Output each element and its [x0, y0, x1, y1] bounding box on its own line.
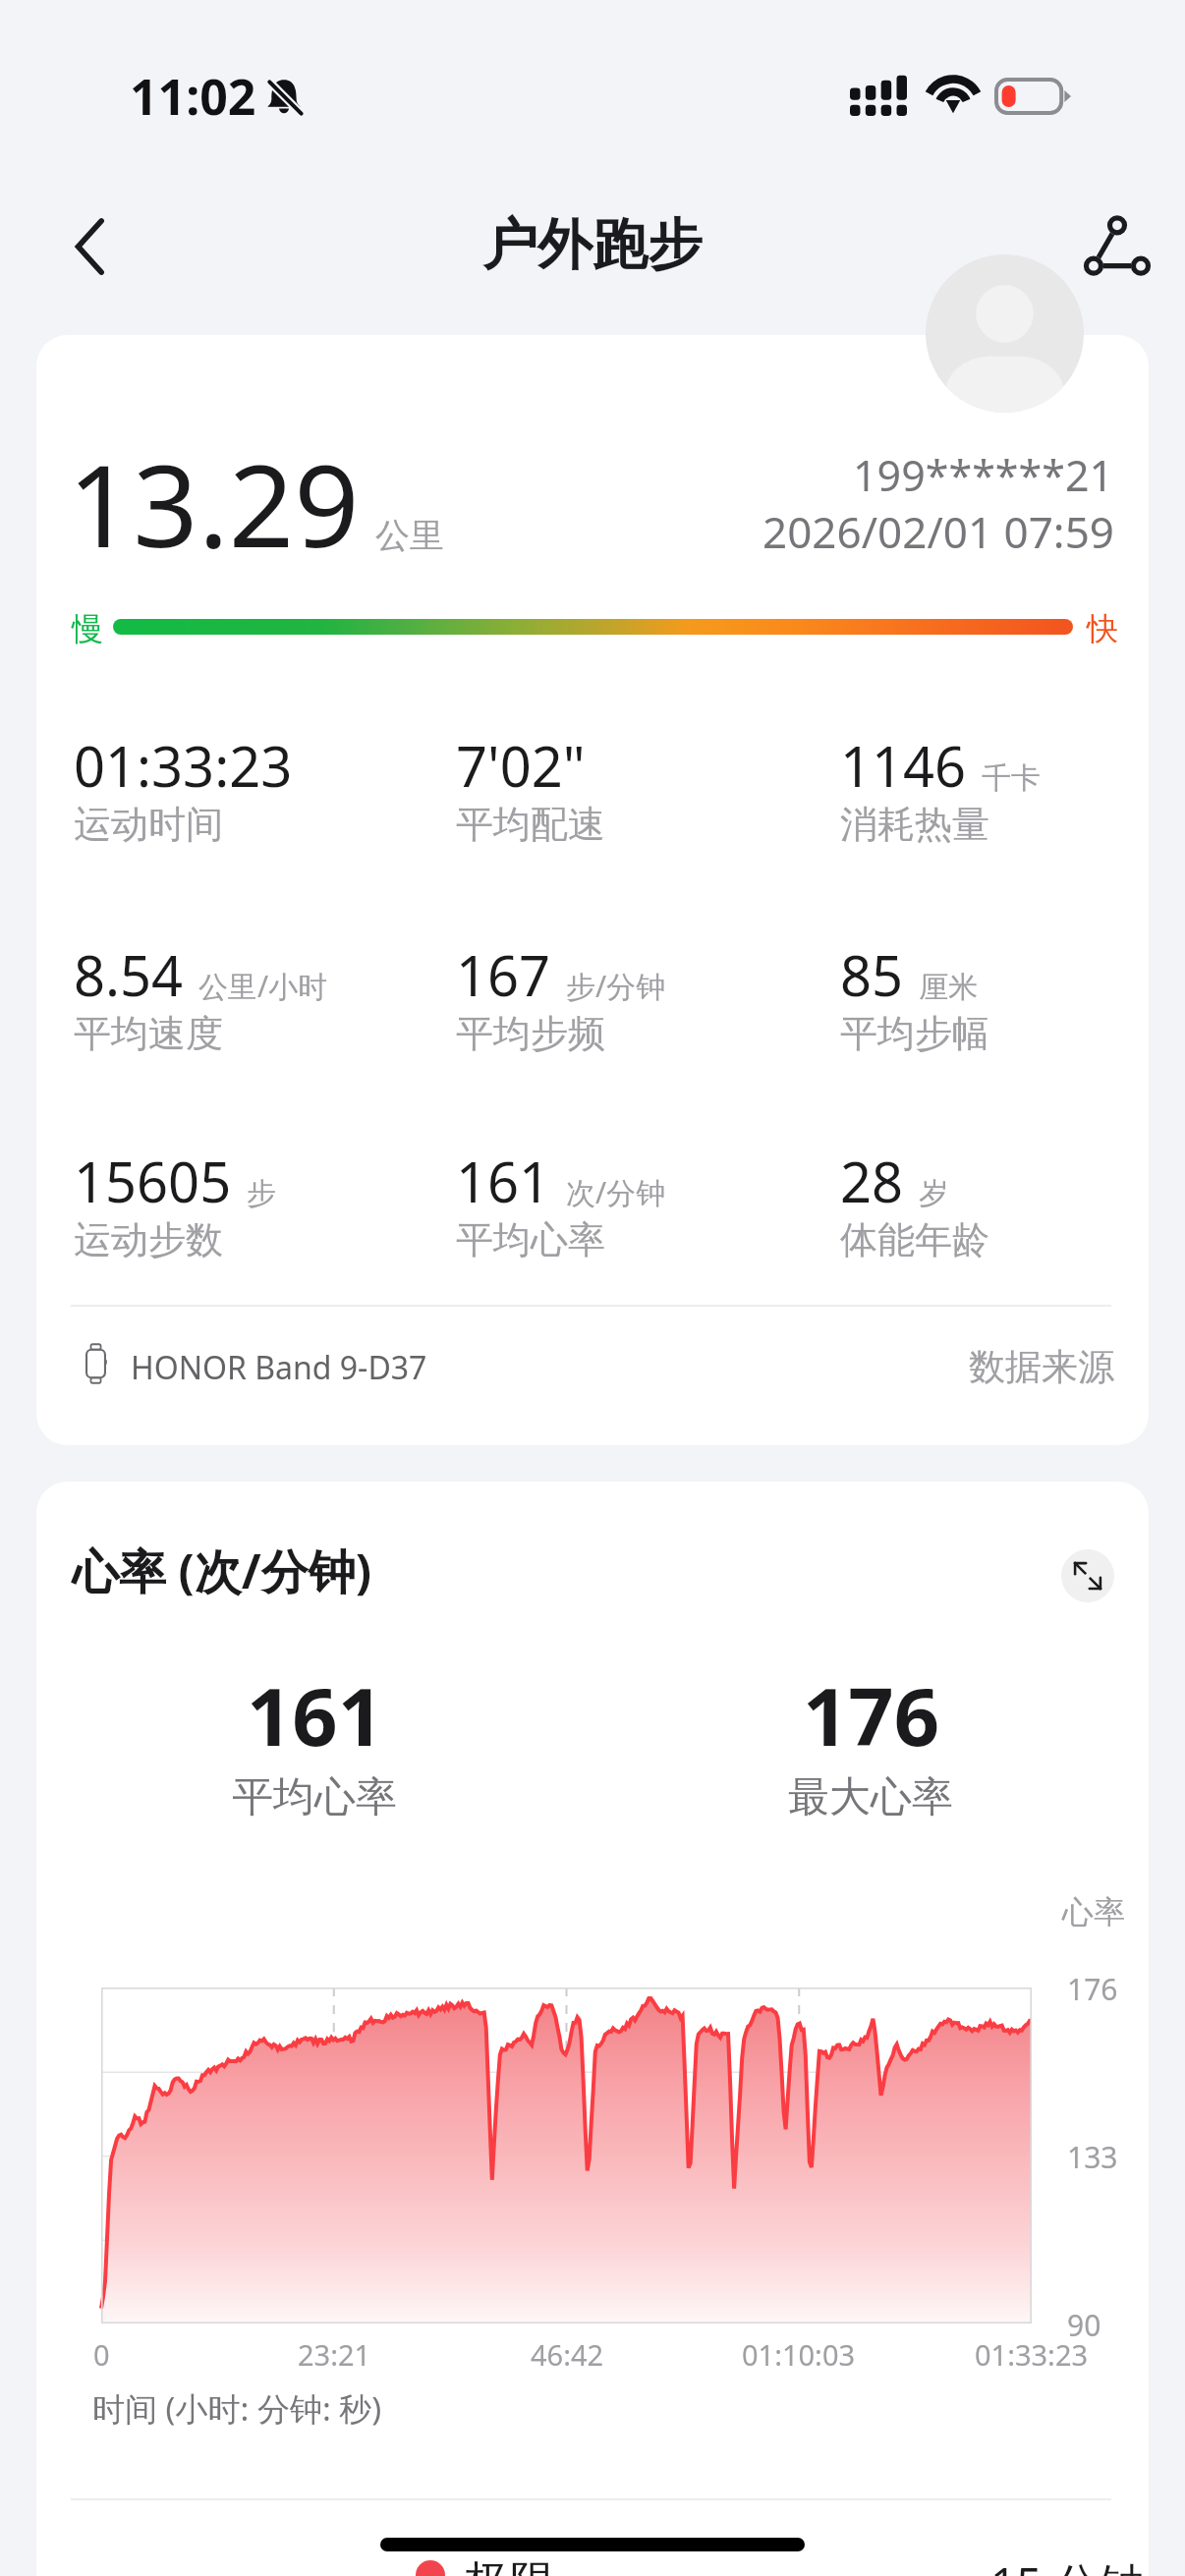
button[interactable]: Expand chart [1061, 1549, 1114, 1602]
staticText: 平均步幅 [840, 1010, 989, 1057]
staticText: 运动步数 [74, 1216, 223, 1263]
staticText: 15605 [74, 1144, 232, 1218]
staticText: 46:42 [531, 2335, 604, 2374]
staticText: 心率 (次/分钟) [72, 1539, 371, 1603]
staticText: 平均步频 [456, 1010, 605, 1057]
staticText: 步/分钟 [566, 966, 666, 1006]
staticText: 199******21 [853, 446, 1114, 504]
staticText: 01:10:03 [742, 2335, 856, 2374]
staticText: 体能年龄 [840, 1216, 989, 1263]
staticText: 28 [840, 1144, 904, 1218]
staticText: 161 [247, 1660, 383, 1768]
staticText: 数据来源 [969, 1344, 1114, 1390]
staticText: 消耗热量 [840, 801, 989, 848]
staticText: 平均心率 [456, 1216, 605, 1263]
staticText: 176 [803, 1660, 939, 1768]
staticText: 11:02 [130, 63, 256, 130]
staticText: HONOR Band 9-D37 [131, 1346, 427, 1389]
staticText: 161 [456, 1144, 551, 1218]
staticText: 公里 [375, 514, 444, 557]
staticText: 23:21 [298, 2335, 371, 2374]
staticText: 176 [1067, 1969, 1118, 2009]
staticText: 2026/02/01 07:59 [762, 502, 1114, 561]
staticText: 厘米 [919, 969, 978, 1006]
staticText: 1146 [840, 728, 967, 803]
staticText: 最大心率 [788, 1771, 953, 1823]
button[interactable]: Share [1070, 198, 1164, 293]
staticText: 次/分钟 [566, 1172, 666, 1212]
staticText: 133 [1067, 2137, 1118, 2177]
staticText: 步 [247, 1175, 276, 1212]
staticText: 快 [1087, 609, 1118, 648]
staticText: 0 [93, 2335, 110, 2374]
staticText: 01:33:23 [74, 728, 293, 803]
button[interactable]: Back [28, 199, 122, 294]
staticText: 公里/小时 [198, 966, 328, 1006]
staticText: 01:33:23 [975, 2335, 1089, 2374]
staticText: 极限 [465, 2554, 555, 2576]
staticText: 慢 [72, 609, 103, 648]
staticText: 8.54 [74, 937, 184, 1012]
staticText: 平均速度 [74, 1010, 223, 1057]
staticText: 平均配速 [456, 801, 605, 848]
staticText: 13.29 [68, 425, 360, 581]
staticText: 167 [456, 937, 551, 1012]
staticText: 平均心率 [232, 1771, 397, 1823]
staticText: 90 [1067, 2305, 1101, 2345]
staticText: 岁 [919, 1175, 948, 1212]
staticText: 85 [840, 937, 904, 1012]
staticText: 户外跑步 [482, 210, 703, 280]
button[interactable]: HONOR Band 9-D37 [71, 1317, 1114, 1411]
staticText: 运动时间 [74, 801, 223, 848]
staticText: 心率 [1062, 1892, 1125, 1932]
staticText: 15 分钟 [990, 2552, 1145, 2576]
staticText: 时间 (小时: 分钟: 秒) [92, 2386, 382, 2431]
staticText: 千卡 [982, 759, 1041, 797]
staticText: 7'02" [456, 728, 586, 803]
